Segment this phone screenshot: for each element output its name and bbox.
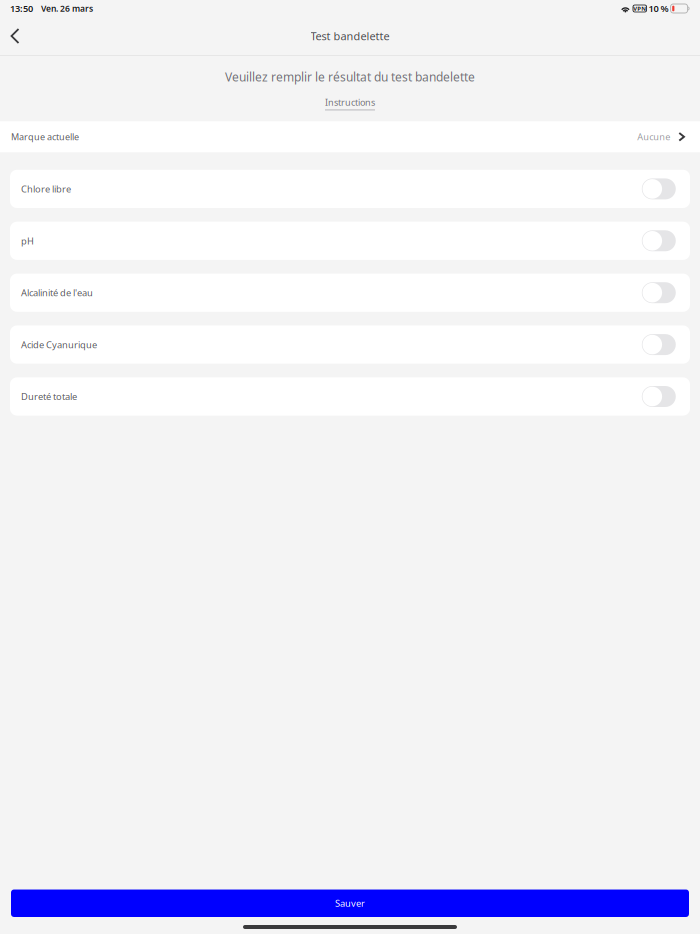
staticText: Dureté totale [21,390,77,403]
staticText: Veuillez remplir le résultat du test ban… [225,69,475,85]
button[interactable]: Back [0,17,30,55]
staticText: Ven. 26 mars [41,3,93,14]
staticText: Chlore libre [21,182,71,195]
button[interactable]: Instructions [321,96,379,110]
staticText: Aucune [637,130,670,143]
staticText: Test bandelette [310,29,389,43]
button[interactable]: Dureté totale [10,377,690,416]
staticText: Acide Cyanurique [21,338,97,351]
staticText: 13:50 [10,2,33,15]
button[interactable]: pH [10,222,690,260]
button[interactable]: Alcalinité de l'eau [10,274,690,312]
button[interactable]: Marque actuelle [0,121,700,152]
button[interactable]: Acide Cyanurique [10,325,690,364]
staticText: pH [21,234,34,247]
staticText: Sauver [335,897,365,910]
button[interactable]: Sauver [11,889,689,917]
staticText: Marque actuelle [11,131,79,143]
staticText: Instructions [325,96,375,108]
staticText: Alcalinité de l'eau [21,286,93,299]
staticText: VPN [633,4,646,12]
button[interactable]: Chlore libre [10,170,690,208]
staticText: 10 % [649,2,669,15]
